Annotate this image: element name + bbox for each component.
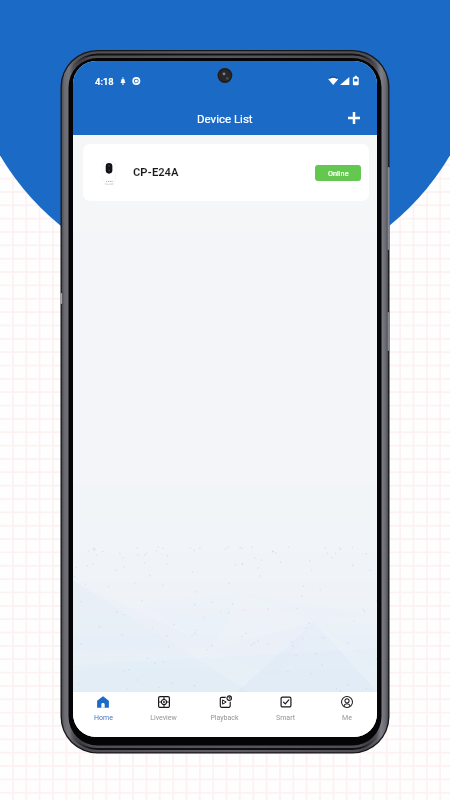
staticText: Online	[328, 169, 349, 178]
staticText: CP-E24A	[133, 166, 179, 179]
staticText: Device List	[197, 112, 253, 125]
button[interactable]: Add device	[343, 107, 365, 129]
staticText: Playback	[210, 714, 239, 722]
button[interactable]: Home	[73, 692, 133, 737]
button[interactable]: Me	[316, 692, 377, 737]
staticText: Me	[342, 714, 352, 722]
button[interactable]: Liveview	[133, 692, 194, 737]
staticText: Smart	[276, 714, 295, 722]
staticText: Liveview	[150, 714, 177, 722]
button[interactable]: Playback	[194, 692, 255, 737]
button[interactable]: CP-E24A	[83, 144, 369, 201]
button[interactable]: Online	[315, 165, 361, 181]
button[interactable]: Smart	[255, 692, 316, 737]
staticText: Home	[94, 714, 113, 722]
staticText: 4:18	[95, 76, 114, 87]
